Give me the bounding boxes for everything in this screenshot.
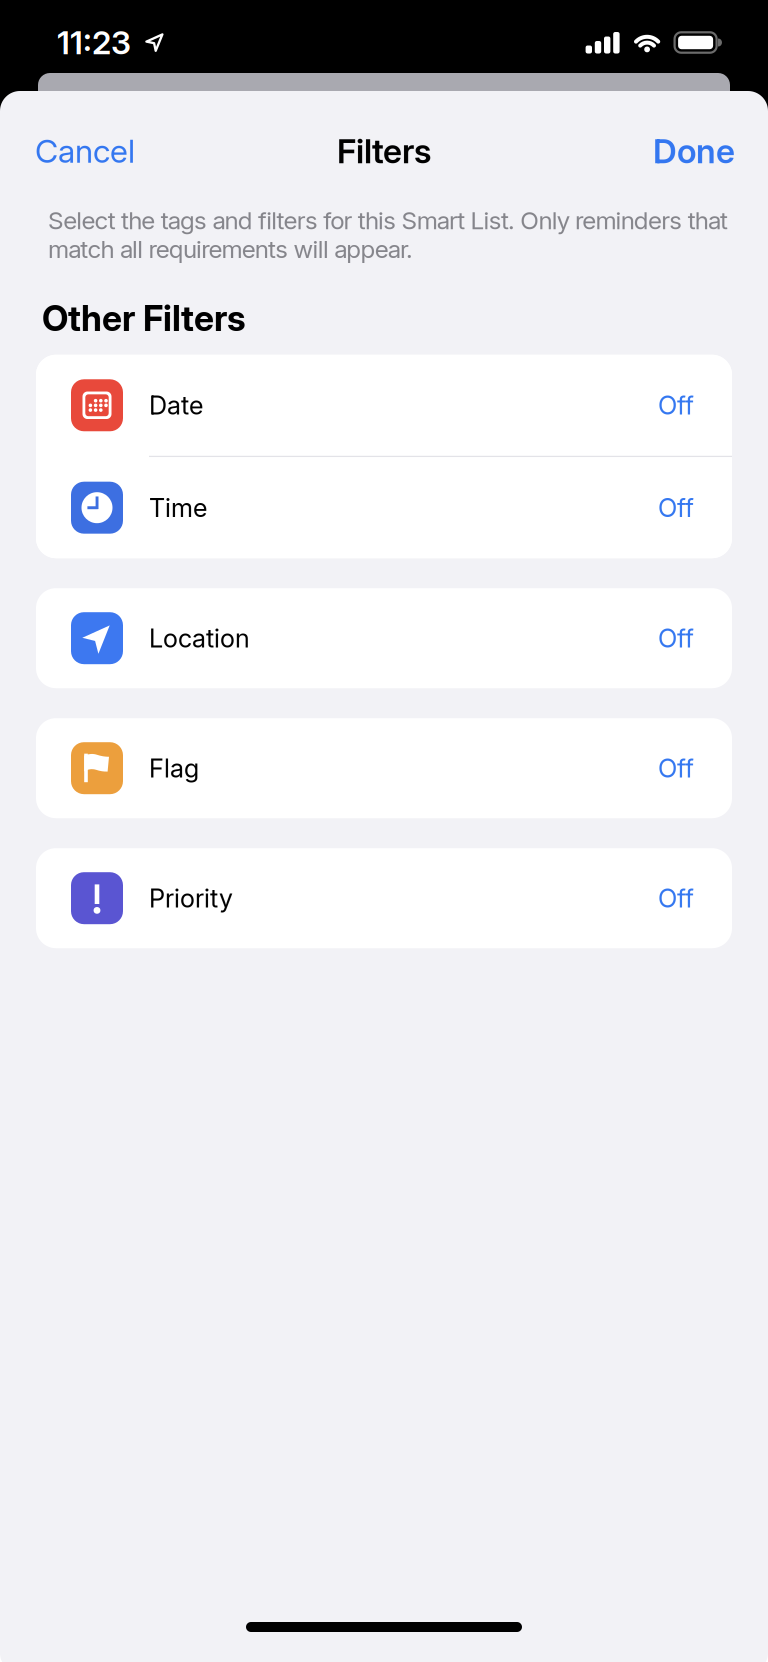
staticText: Off [658, 390, 694, 420]
staticText: Priority [149, 883, 233, 913]
button[interactable]: Time [36, 457, 732, 558]
button[interactable]: Flag [36, 718, 732, 818]
button[interactable]: Date [36, 355, 732, 456]
staticText: Off [658, 883, 694, 913]
staticText: match all requirements will appear. [48, 235, 413, 264]
staticText: Off [658, 493, 694, 523]
staticText: Other Filters [42, 298, 246, 339]
staticText: Cancel [35, 132, 135, 170]
staticText: Done [653, 131, 735, 171]
staticText: 11:23 [57, 24, 131, 61]
button[interactable]: Done [653, 131, 735, 171]
staticText: Off [658, 753, 694, 783]
staticText: Date [149, 390, 203, 420]
button[interactable]: Location [36, 588, 732, 688]
staticText: Filters [337, 131, 431, 171]
button[interactable]: Priority [36, 848, 732, 948]
staticText: Time [149, 493, 207, 523]
staticText: Off [658, 623, 694, 653]
staticText: Location [149, 623, 250, 653]
staticText: Select the tags and filters for this Sma… [48, 206, 728, 235]
staticText: Flag [149, 753, 199, 783]
button[interactable]: Cancel [35, 132, 135, 170]
